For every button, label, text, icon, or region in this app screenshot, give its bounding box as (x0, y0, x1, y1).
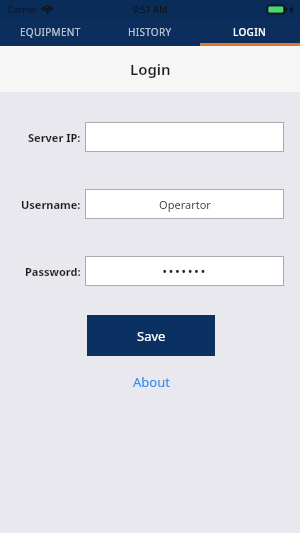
staticText: Carrier (8, 3, 38, 15)
staticText: 9:51 AM (133, 3, 168, 15)
button[interactable]: Operartor (85, 189, 284, 219)
button[interactable]: LOGIN (200, 18, 300, 46)
staticText: ••••••• (162, 262, 207, 280)
staticText: EQUIPMENT (20, 25, 81, 39)
staticText: Username: (21, 197, 81, 212)
button[interactable] (85, 122, 284, 152)
staticText: LOGIN (233, 25, 267, 39)
button[interactable]: HISTORY (100, 18, 200, 46)
staticText: Save (137, 327, 166, 345)
staticText: Password: (25, 264, 81, 279)
button[interactable]: ••••••• (85, 256, 284, 286)
staticText: Server IP: (28, 130, 81, 145)
staticText: About (133, 373, 170, 391)
button[interactable]: EQUIPMENT (0, 18, 100, 46)
staticText: Login (130, 59, 171, 79)
staticText: HISTORY (128, 25, 172, 39)
button[interactable]: Save (87, 315, 215, 356)
button[interactable]: About (123, 370, 180, 394)
staticText: Operartor (159, 197, 211, 212)
